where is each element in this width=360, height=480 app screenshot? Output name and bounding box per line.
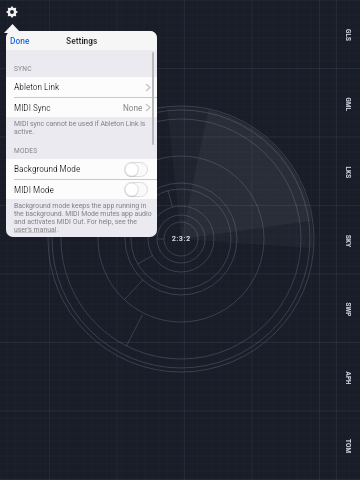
staticText: TOM bbox=[345, 439, 352, 454]
staticText: . bbox=[57, 226, 59, 234]
button[interactable]: 2:3:2 bbox=[161, 232, 201, 246]
button[interactable]: Done bbox=[10, 36, 30, 46]
staticText: None bbox=[123, 103, 143, 113]
staticText: MIDI Mode bbox=[14, 185, 54, 195]
staticText: GLS bbox=[345, 29, 352, 42]
staticText: LKS bbox=[344, 166, 351, 178]
button[interactable]: SKY bbox=[339, 230, 357, 252]
button[interactable]: GML bbox=[339, 93, 357, 115]
staticText: user's manual bbox=[14, 226, 57, 234]
staticText: MIDI Sync bbox=[14, 103, 51, 113]
button[interactable]: GLS bbox=[339, 24, 357, 46]
staticText: active. bbox=[14, 128, 35, 136]
button[interactable]: APH bbox=[339, 367, 357, 389]
button[interactable]: MIDI Mode bbox=[6, 180, 157, 199]
staticText: APH bbox=[344, 371, 351, 385]
staticText: 2:3:2 bbox=[172, 235, 191, 243]
button[interactable]: LKS bbox=[339, 161, 357, 183]
button[interactable]: Settings bbox=[2, 2, 21, 21]
staticText: Background Mode bbox=[14, 164, 81, 174]
staticText: Background mode keeps the app running in bbox=[14, 202, 147, 210]
button[interactable]: SWP bbox=[339, 298, 357, 320]
staticText: SWP bbox=[344, 302, 351, 316]
staticText: Settings bbox=[66, 36, 98, 46]
button[interactable]: user's manual bbox=[14, 226, 59, 234]
button[interactable]: TOM bbox=[339, 435, 357, 457]
staticText: SYNC bbox=[14, 65, 32, 73]
staticText: and activates MIDI Out. For help, see th… bbox=[14, 218, 138, 226]
staticText: MIDI sync cannot be used if Ableton Link… bbox=[14, 120, 146, 128]
staticText: MODES bbox=[14, 147, 38, 155]
staticText: SKY bbox=[345, 235, 352, 248]
staticText: Ableton Link bbox=[14, 82, 60, 92]
staticText: Done bbox=[10, 36, 30, 46]
button[interactable]: MIDI Sync bbox=[6, 98, 157, 117]
button[interactable]: Ableton Link bbox=[6, 77, 157, 97]
button[interactable]: Background Mode bbox=[6, 159, 157, 179]
staticText: the background. MIDI Mode mutes app audi… bbox=[14, 210, 152, 218]
staticText: GML bbox=[344, 97, 351, 111]
